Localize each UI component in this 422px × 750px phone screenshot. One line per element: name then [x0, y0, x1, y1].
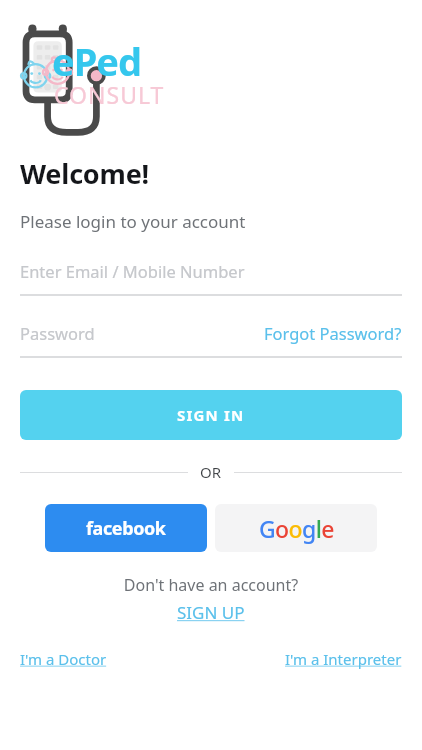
staticText: Password — [20, 322, 95, 344]
button[interactable]: Forgot Password? — [264, 322, 402, 344]
button[interactable]: Password — [20, 322, 264, 344]
staticText: ePed — [52, 35, 141, 87]
button[interactable]: facebook — [45, 504, 207, 552]
staticText: Please login to your account — [20, 210, 246, 233]
staticText: OR — [200, 462, 222, 482]
staticText: SIGN UP — [177, 601, 245, 624]
staticText: CONSULT — [54, 79, 165, 110]
staticText: I'm a Doctor — [20, 649, 107, 669]
staticText: Enter Email / Mobile Number — [20, 260, 245, 282]
button[interactable]: SIGN UP — [171, 600, 251, 625]
staticText: I'm a Interpreter — [285, 649, 402, 669]
button[interactable]: I'm a Interpreter — [285, 647, 402, 671]
button[interactable]: Enter Email / Mobile Number — [20, 260, 402, 296]
button[interactable]: SIGN IN — [20, 390, 402, 440]
staticText: Google — [259, 513, 334, 544]
staticText: facebook — [86, 516, 166, 541]
button[interactable]: I'm a Doctor — [20, 647, 107, 671]
staticText: Welcome! — [20, 155, 149, 192]
button[interactable]: Google — [215, 504, 377, 552]
staticText: SIGN IN — [177, 405, 245, 425]
staticText: Don't have an account? — [0, 574, 422, 596]
staticText: Forgot Password? — [264, 322, 402, 344]
